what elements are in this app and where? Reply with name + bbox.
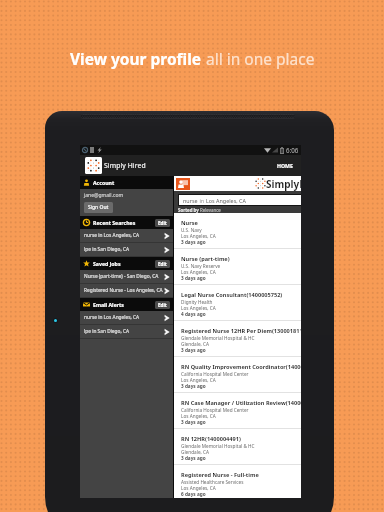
staticText: 6:06 xyxy=(286,146,299,154)
staticText: RN 12HR(1400004491) xyxy=(181,435,241,443)
staticText: Los Angeles, CA xyxy=(181,413,216,419)
staticText: Glendale Memorial Hospital & HC xyxy=(181,443,255,449)
staticText: jane@gmail.com xyxy=(84,192,124,199)
staticText: 3 days ago xyxy=(181,239,206,245)
button[interactable]: Legal Nurse Consultant(1400005752) xyxy=(174,285,301,321)
button[interactable]: Registered Nurse - Full-time xyxy=(174,465,301,498)
staticText: Edit xyxy=(158,220,167,226)
staticText: Los Angeles, CA xyxy=(181,305,216,311)
staticText: Edit xyxy=(158,302,167,308)
staticText: lpe in San Diego, CA xyxy=(84,246,164,253)
button[interactable]: RN 12HR(1400004491) xyxy=(174,429,301,465)
button[interactable]: RN Quality Improvement Coordinator(14000… xyxy=(174,357,301,393)
staticText: RN Case Manager / Utilization Review(140… xyxy=(181,399,301,407)
staticText: Registered Nurse 12HR Per Diem(130001811… xyxy=(181,327,301,335)
button[interactable]: Nurse (part-time) - San Diego, CA xyxy=(80,270,173,283)
staticText: nurse xyxy=(183,197,198,204)
staticText: Recent Searches xyxy=(93,219,136,226)
staticText: Glendale Memorial Hospital & HC xyxy=(181,335,255,341)
staticText: Los Angeles, CA xyxy=(206,197,246,204)
staticText: U.S. Navy xyxy=(181,227,202,233)
staticText: Assisted Healthcare Services xyxy=(181,479,244,485)
staticText: Los Angeles, CA xyxy=(181,233,216,239)
staticText: California Hospital Med Center xyxy=(181,407,249,413)
staticText: Simply Hired xyxy=(104,161,146,170)
staticText: California Hospital Med Center xyxy=(181,371,249,377)
button[interactable]: Edit xyxy=(155,260,170,268)
button[interactable]: Registered Nurse - Los Angeles, CA xyxy=(80,284,173,297)
button[interactable]: Edit xyxy=(155,219,170,227)
staticText: SimplyHired xyxy=(266,177,301,191)
staticText: 3 days ago xyxy=(181,455,206,461)
staticText: Glendale, CA xyxy=(181,449,209,455)
staticText: 3 days ago xyxy=(181,419,206,425)
staticText: Sign Out xyxy=(88,204,109,211)
staticText: Edit xyxy=(158,261,167,267)
staticText: RN Quality Improvement Coordinator(14000… xyxy=(181,363,301,371)
button[interactable]: Nurse xyxy=(174,213,301,249)
staticText: 3 days ago xyxy=(181,347,206,353)
staticText: Relevance xyxy=(200,207,221,213)
button[interactable]: nurse in Los Angeles, CA xyxy=(80,311,173,324)
button[interactable]: HOME xyxy=(274,156,296,175)
staticText: 4 days ago xyxy=(181,311,206,317)
staticText: Account xyxy=(93,179,115,186)
staticText: Registered Nurse - Los Angeles, CA xyxy=(84,287,164,294)
staticText: 6 days ago xyxy=(181,491,206,497)
staticText: Legal Nurse Consultant(1400005752) xyxy=(181,291,283,299)
staticText: Nurse (part-time) - San Diego, CA xyxy=(84,273,164,280)
staticText: Los Angeles, CA xyxy=(181,485,216,491)
button[interactable]: RN Case Manager / Utilization Review(140… xyxy=(174,393,301,429)
staticText: Email Alerts xyxy=(93,301,124,308)
staticText: Los Angeles, CA xyxy=(181,269,216,275)
button[interactable]: Edit xyxy=(155,301,170,309)
staticText: Nurse xyxy=(181,219,198,227)
staticText: nurse in Los Angeles, CA xyxy=(84,314,164,321)
button[interactable]: Nurse (part-time) xyxy=(174,249,301,285)
staticText: nurse in Los Angeles, CA xyxy=(84,232,164,239)
staticText: Registered Nurse - Full-time xyxy=(181,471,259,479)
staticText: HOME xyxy=(277,162,293,169)
button[interactable]: Profile xyxy=(176,178,190,190)
button[interactable]: Registered Nurse 12HR Per Diem(130001811… xyxy=(174,321,301,357)
staticText: 3 days ago xyxy=(181,275,206,281)
staticText: Nurse (part-time) xyxy=(181,255,230,263)
staticText: all in one place xyxy=(206,48,315,69)
button[interactable]: nurse xyxy=(179,195,301,205)
staticText: Dignity Health xyxy=(181,299,213,305)
button[interactable]: Sign Out xyxy=(84,202,113,213)
button[interactable]: lpe in San Diego, CA xyxy=(80,243,173,256)
staticText: View your profile xyxy=(70,48,206,69)
staticText: in xyxy=(198,197,206,204)
staticText: Glendale, CA xyxy=(181,341,209,347)
staticText: 3 days ago xyxy=(181,383,206,389)
staticText: Los Angeles, CA xyxy=(181,377,216,383)
button[interactable]: nurse in Los Angeles, CA xyxy=(80,229,173,242)
staticText: lpe in San Diego, CA xyxy=(84,328,164,335)
staticText: U.S. Navy Reserve xyxy=(181,263,221,269)
staticText: Sorted by xyxy=(178,207,200,213)
staticText: Saved Jobs xyxy=(93,260,121,267)
button[interactable]: lpe in San Diego, CA xyxy=(80,325,173,338)
